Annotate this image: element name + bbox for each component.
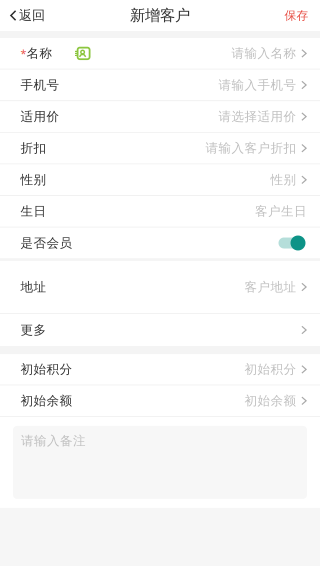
button[interactable]: 更多 — [0, 314, 320, 346]
button[interactable]: 请输入备注 — [13, 426, 307, 499]
button[interactable]: 初始余额 — [0, 385, 320, 416]
button[interactable]: 适用价 — [0, 101, 320, 132]
staticText: 新增客户 — [130, 6, 190, 25]
staticText: * — [20, 46, 26, 61]
button[interactable]: 生日 — [0, 196, 320, 227]
staticText: 性别 — [270, 172, 296, 188]
button[interactable]: 性别 — [0, 164, 320, 195]
staticText: 请输入客户折扣 — [205, 140, 296, 156]
staticText: 请输入手机号 — [218, 77, 296, 93]
staticText: 请输入名称 — [231, 45, 296, 61]
staticText: 初始余额 — [244, 393, 296, 409]
staticText: 名称 — [26, 45, 52, 61]
staticText: 性别 — [20, 172, 46, 188]
button[interactable]: 是否会员 — [0, 228, 320, 258]
staticText: 初始积分 — [244, 361, 296, 377]
button[interactable]: 初始积分 — [0, 354, 320, 385]
staticText: 手机号 — [20, 77, 59, 93]
button[interactable]: 折扣 — [0, 133, 320, 164]
staticText: 请输入备注 — [21, 433, 86, 449]
staticText: 保存 — [284, 8, 308, 23]
button[interactable]: 手机号 — [0, 70, 320, 100]
staticText: 初始积分 — [20, 361, 72, 377]
button[interactable]: 保存 — [274, 2, 320, 29]
staticText: 初始余额 — [20, 393, 72, 409]
staticText: 客户生日 — [255, 203, 307, 219]
staticText: 返回 — [19, 7, 45, 24]
staticText: 地址 — [20, 279, 46, 295]
staticText: 生日 — [20, 203, 46, 219]
button[interactable]: 返回 — [0, 2, 53, 29]
staticText: 更多 — [20, 322, 46, 338]
staticText: 请选择适用价 — [218, 109, 296, 124]
button[interactable]: 地址 — [0, 261, 320, 313]
staticText: 是否会员 — [20, 235, 72, 251]
staticText: 折扣 — [20, 140, 46, 156]
button[interactable]: * — [0, 38, 320, 69]
staticText: 客户地址 — [244, 279, 296, 295]
staticText: 适用价 — [20, 109, 59, 124]
